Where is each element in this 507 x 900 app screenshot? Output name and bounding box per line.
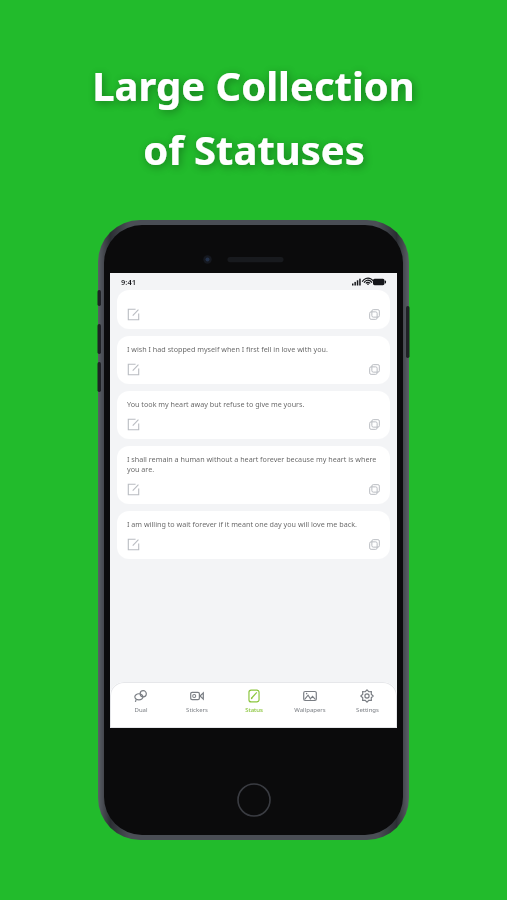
staticText: You took my heart away but refuse to giv…	[127, 399, 305, 409]
staticText: I wish I had stopped myself when I first…	[127, 344, 328, 354]
button[interactable]: I wish I had stopped myself when I first…	[117, 336, 390, 384]
staticText: Large Collection	[92, 58, 415, 112]
button[interactable]: Copy status	[369, 539, 380, 550]
button[interactable]: Status	[228, 689, 280, 724]
button[interactable]: Copy status	[369, 309, 380, 320]
staticText: Status	[245, 706, 263, 714]
button[interactable]: Edit status	[127, 363, 140, 376]
staticText: I am willing to wait forever if it meant…	[127, 519, 357, 529]
button[interactable]: Home	[237, 783, 271, 817]
button[interactable]: Edit status	[127, 418, 140, 431]
button[interactable]: Dual	[115, 689, 167, 724]
button[interactable]: Copy status	[369, 484, 380, 495]
staticText: Dual	[134, 706, 148, 714]
staticText: I shall remain a human without a heart f…	[127, 454, 380, 474]
button[interactable]: Wallpapers	[284, 689, 336, 724]
button[interactable]: Copy status	[369, 364, 380, 375]
button[interactable]: Edit status	[127, 483, 140, 496]
button[interactable]: Edit status	[127, 308, 140, 321]
button[interactable]: I am willing to wait forever if it meant…	[117, 511, 390, 559]
button[interactable]: Edit status	[127, 538, 140, 551]
staticText: 9:41	[121, 277, 136, 287]
button[interactable]: Copy status	[369, 419, 380, 430]
staticText: Settings	[356, 706, 379, 714]
button[interactable]: Edit status	[117, 290, 390, 329]
button[interactable]: Settings	[341, 689, 393, 724]
staticText: Wallpapers	[294, 706, 326, 714]
button[interactable]: I shall remain a human without a heart f…	[117, 446, 390, 504]
staticText: Stickers	[186, 706, 208, 714]
button[interactable]: You took my heart away but refuse to giv…	[117, 391, 390, 439]
button[interactable]: Stickers	[171, 689, 223, 724]
staticText: of Statuses	[143, 122, 365, 176]
